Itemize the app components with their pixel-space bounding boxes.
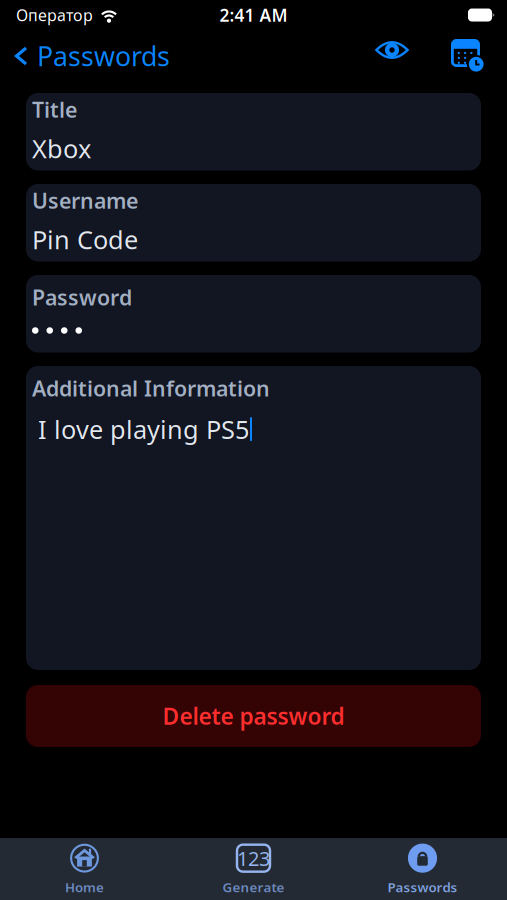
- staticText: Passwords: [387, 878, 457, 896]
- button[interactable]: Delete password: [26, 685, 481, 747]
- button[interactable]: Passwords: [338, 838, 507, 900]
- staticText: 123: [237, 845, 270, 871]
- button[interactable]: 123: [169, 838, 338, 900]
- button[interactable]: Home: [0, 838, 169, 900]
- staticText: Username: [32, 186, 138, 215]
- staticText: Оператор: [16, 4, 93, 26]
- staticText: Home: [65, 878, 104, 896]
- staticText: Xbox: [32, 132, 91, 165]
- staticText: Pin Code: [32, 223, 138, 256]
- button[interactable]: Password history: [451, 39, 485, 73]
- staticText: I love playing PS5: [38, 412, 249, 446]
- staticText: Delete password: [162, 701, 344, 731]
- staticText: Title: [32, 95, 77, 124]
- staticText: Passwords: [37, 38, 170, 74]
- staticText: 2:41 AM: [219, 3, 287, 26]
- staticText: Password: [32, 283, 132, 311]
- button[interactable]: Show password: [375, 39, 409, 73]
- button[interactable]: Passwords: [0, 36, 180, 76]
- staticText: Generate: [222, 878, 284, 896]
- staticText: Additional Information: [32, 374, 270, 402]
